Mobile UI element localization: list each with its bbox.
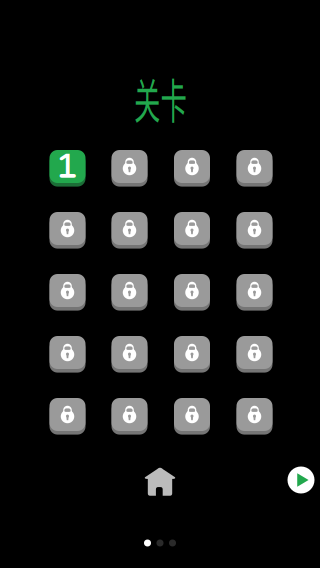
button[interactable]: Level 17, locked	[49, 398, 85, 435]
staticText: 关卡	[116, 66, 204, 130]
button[interactable]: Level 14, locked	[111, 336, 147, 373]
button[interactable]: Level 2, locked	[111, 150, 147, 187]
button[interactable]: Home	[144, 466, 176, 496]
button[interactable]: Level 15, locked	[174, 336, 210, 373]
button[interactable]: Level 19, locked	[174, 398, 210, 435]
button[interactable]: Level 9, locked	[49, 274, 85, 311]
button[interactable]: Level 11, locked	[174, 274, 210, 311]
button[interactable]: Level 12, locked	[236, 274, 272, 311]
button[interactable]: Level 1	[49, 150, 85, 187]
button[interactable]: Level 8, locked	[236, 212, 272, 249]
button[interactable]: Play	[287, 466, 314, 493]
button[interactable]: Level 4, locked	[236, 150, 272, 187]
button[interactable]: Level 3, locked	[174, 150, 210, 187]
button[interactable]: Level 16, locked	[236, 336, 272, 373]
button[interactable]: Level 18, locked	[111, 398, 147, 435]
button[interactable]: Level 6, locked	[111, 212, 147, 249]
button[interactable]: Level 7, locked	[174, 212, 210, 249]
button[interactable]: Level 5, locked	[49, 212, 85, 249]
button[interactable]: Level 13, locked	[49, 336, 85, 373]
button[interactable]: Level 20, locked	[236, 398, 272, 435]
button[interactable]: Level 10, locked	[111, 274, 147, 311]
staticText: 1	[56, 148, 78, 185]
